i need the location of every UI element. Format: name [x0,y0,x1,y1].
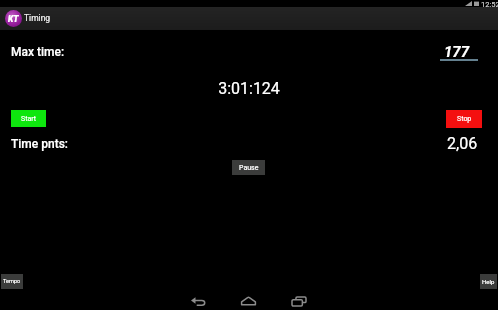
button[interactable]: Back [184,287,212,310]
button[interactable]: Stop [446,110,482,128]
staticText: Stop [457,115,472,123]
staticText: Help [482,278,495,285]
button[interactable]: Home [234,287,262,310]
staticText: 2,06 [447,134,478,153]
staticText: Start [21,115,37,123]
staticText: 177 [444,43,470,61]
button[interactable]: Help [480,274,497,289]
staticText: Time pnts: [11,137,68,151]
button[interactable]: Recents [285,287,313,310]
button[interactable]: Tempo [1,274,23,289]
button[interactable]: Start [11,110,46,127]
staticText: Timing [24,13,51,23]
button[interactable]: Pause [232,160,265,175]
staticText: 12:52 [481,0,498,7]
staticText: KT [8,14,19,24]
staticText: Pause [239,164,259,172]
staticText: 3:01:124 [0,79,498,98]
staticText: Max time: [11,45,65,59]
staticText: Tempo [3,278,21,285]
